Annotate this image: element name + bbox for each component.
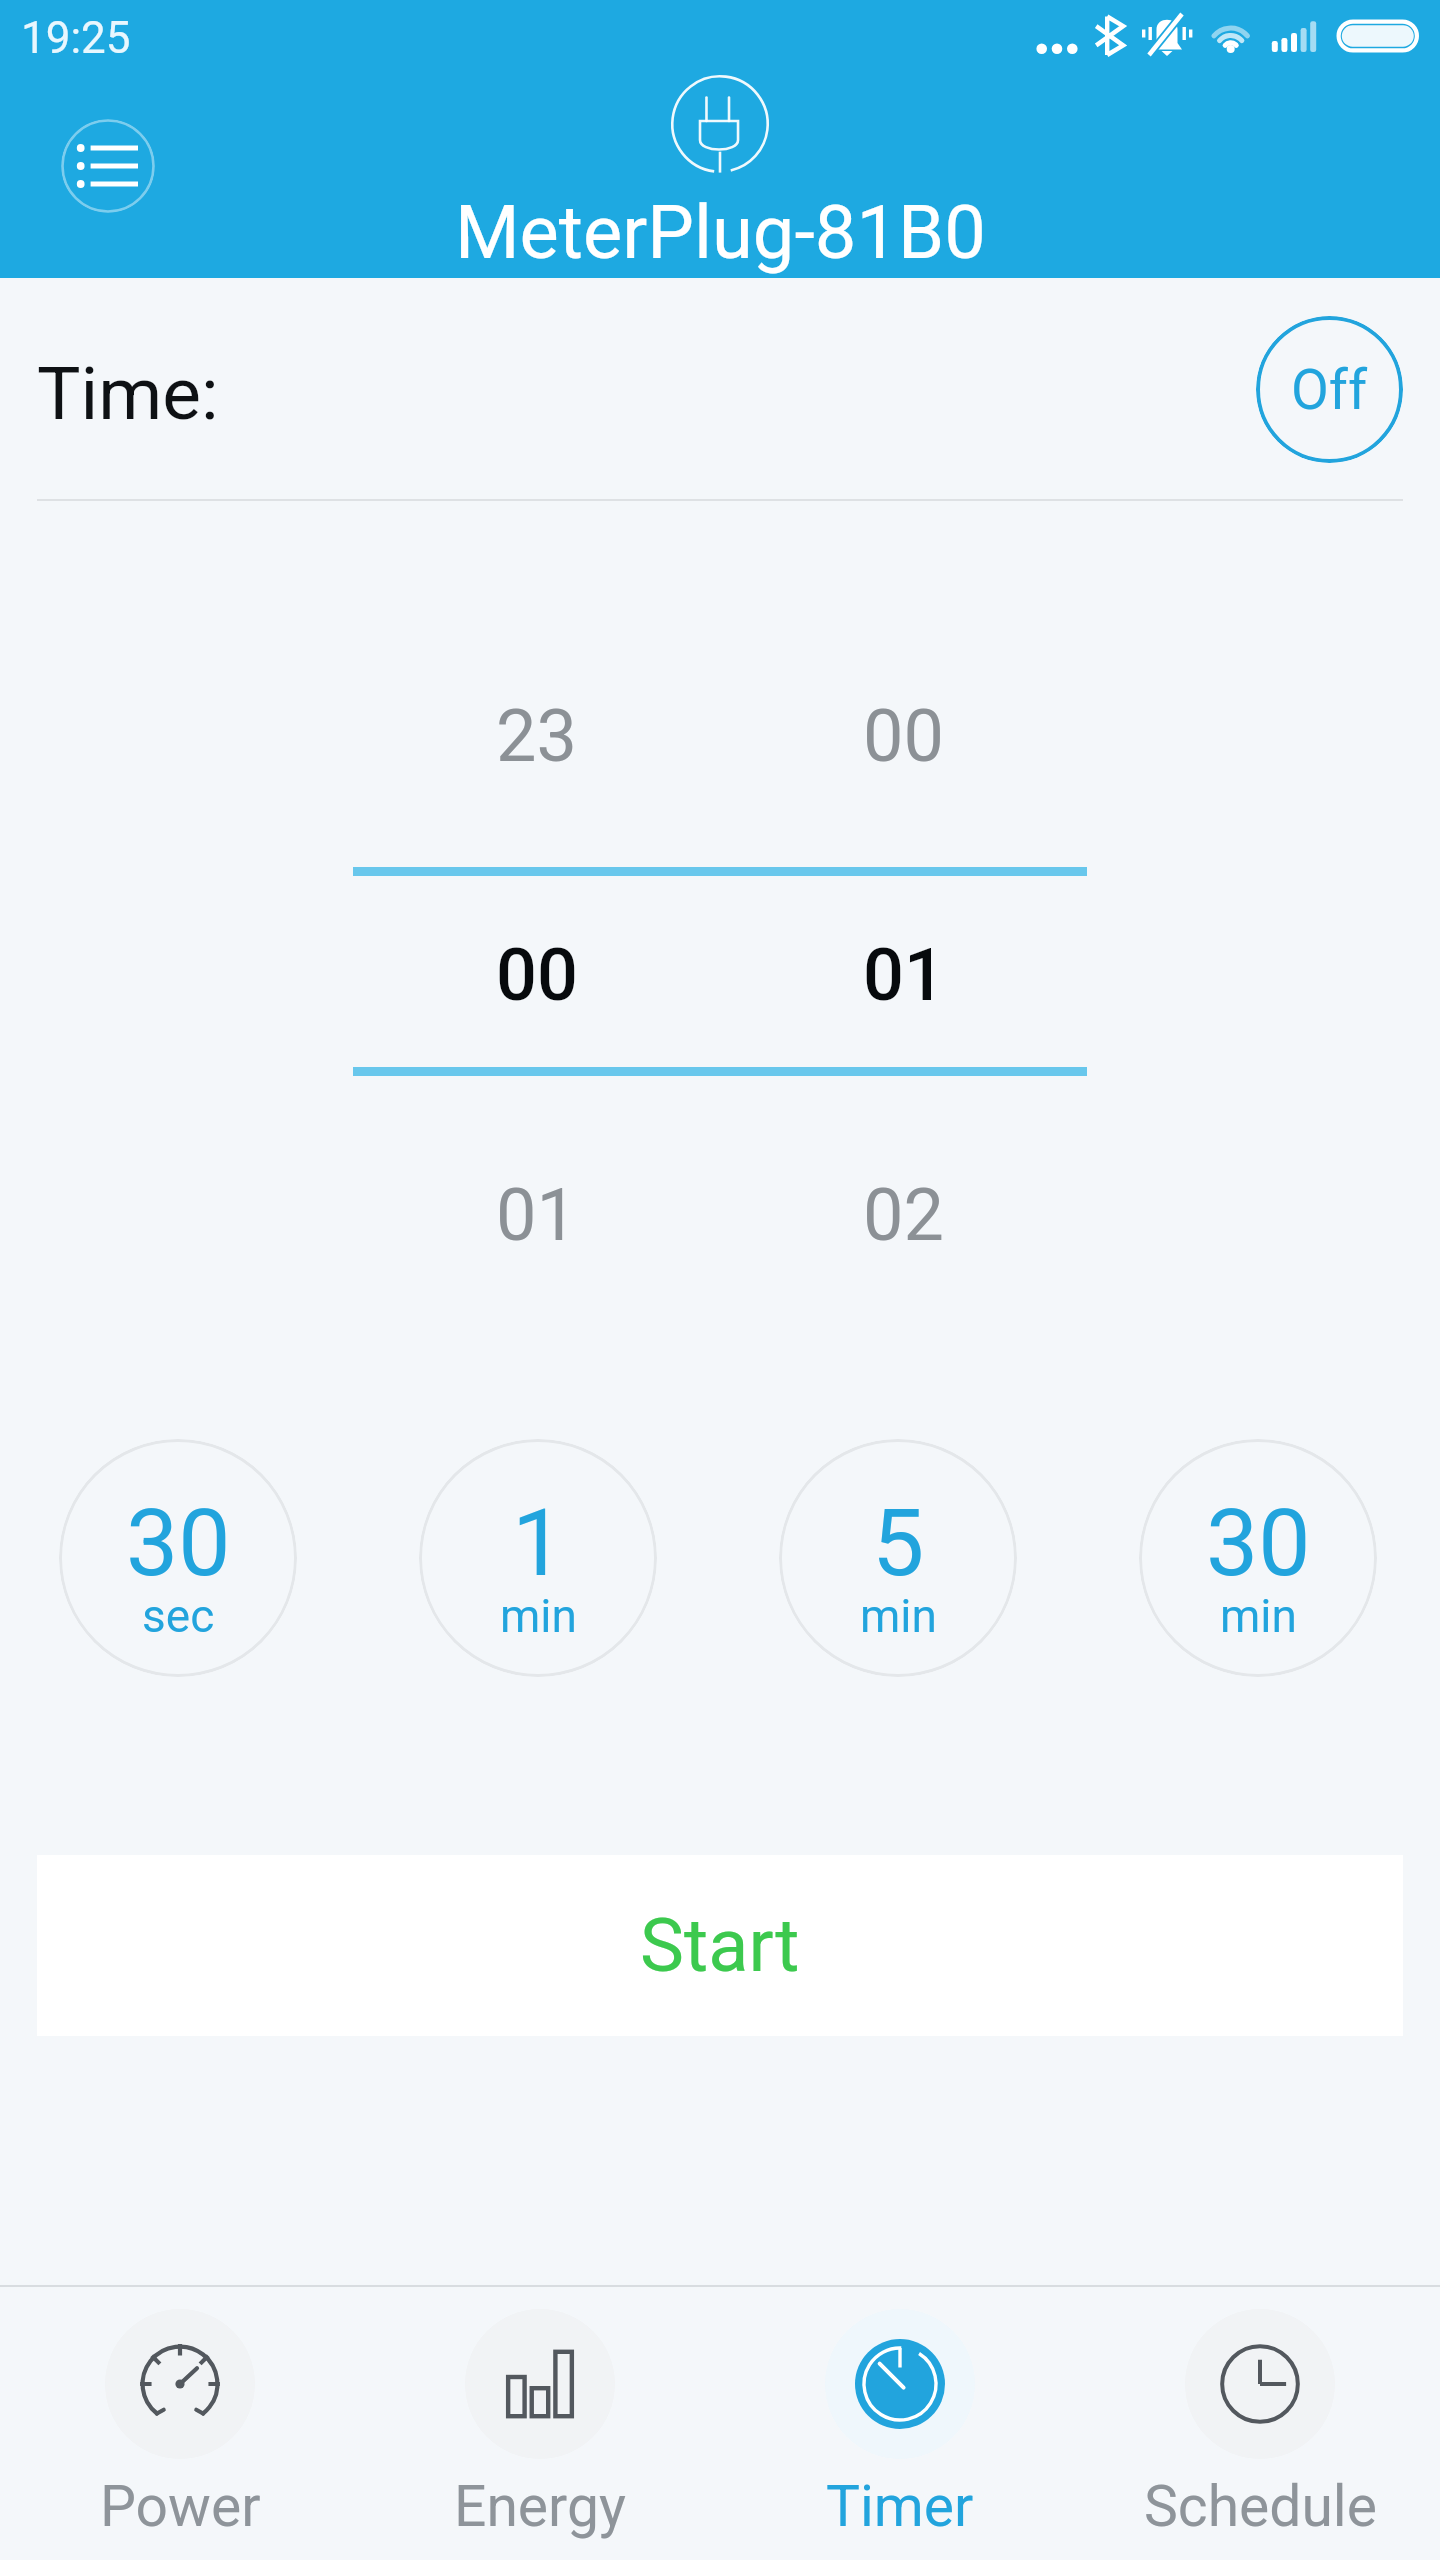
staticText: 01 [863,933,945,1017]
button[interactable]: Schedule [1085,2295,1435,2560]
staticText: 1 [512,1489,565,1598]
staticText: min [1220,1589,1297,1643]
staticText: min [860,1589,937,1643]
staticText: 30 [126,1489,231,1598]
staticText: min [500,1589,577,1643]
button[interactable]: 30 [1139,1439,1377,1677]
staticText: Timer [826,2473,974,2540]
staticText: sec [142,1589,215,1643]
button[interactable]: Timer [725,2295,1075,2560]
staticText: 19:25 [21,12,131,64]
button[interactable]: Device list [61,119,155,213]
staticText: Schedule [1144,2473,1377,2540]
staticText: Start [640,1902,800,1989]
staticText: MeterPlug-81B0 [455,189,986,276]
button[interactable]: 1 [419,1439,657,1677]
staticText: Power [100,2473,261,2540]
button[interactable]: 30 [59,1439,297,1677]
button[interactable]: Off [1256,316,1403,463]
staticText: 5 [872,1489,925,1598]
staticText: Off [1291,358,1368,422]
staticText: Time: [37,351,219,437]
button[interactable]: Start [37,1855,1403,2036]
staticText: 00 [496,933,578,1017]
button[interactable]: Power [5,2295,355,2560]
staticText: 00 [863,694,944,778]
staticText: Energy [454,2473,626,2540]
button[interactable]: Energy [365,2295,715,2560]
staticText: 02 [863,1173,944,1257]
staticText: 30 [1206,1489,1311,1598]
button[interactable]: 5 [779,1439,1017,1677]
staticText: 01 [496,1173,577,1257]
staticText: 23 [496,694,577,778]
